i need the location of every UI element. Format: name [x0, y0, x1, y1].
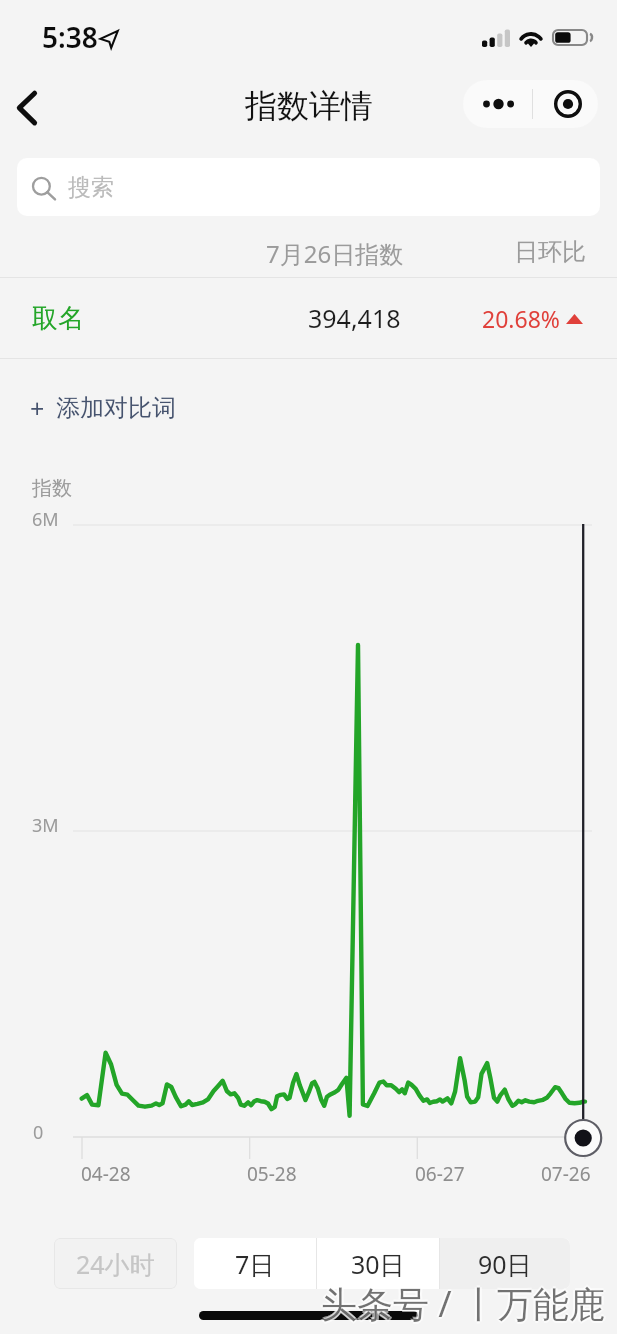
button[interactable]: 取名: [0, 278, 617, 358]
staticText: 90日: [478, 1247, 532, 1281]
staticText: +: [30, 391, 45, 425]
staticText: 头条号 / 丨万能鹿: [321, 1279, 606, 1328]
staticText: 取名: [32, 302, 84, 335]
staticText: 05-28: [247, 1161, 297, 1187]
staticText: 5:38: [42, 18, 98, 56]
button[interactable]: Close mini program: [533, 80, 598, 128]
staticText: 3M: [32, 813, 59, 838]
button[interactable]: 搜索: [17, 158, 600, 216]
staticText: 添加对比词: [56, 393, 176, 423]
staticText: 24小时: [76, 1247, 155, 1281]
staticText: 06-27: [415, 1161, 465, 1187]
staticText: 指数详情: [245, 86, 373, 126]
button[interactable]: 24小时: [54, 1238, 177, 1289]
staticText: 0: [33, 1120, 44, 1145]
staticText: 搜索: [68, 173, 114, 202]
staticText: 04-28: [81, 1161, 131, 1187]
button[interactable]: 90日: [440, 1238, 570, 1289]
button[interactable]: 7日: [194, 1238, 316, 1289]
staticText: 20.68%: [482, 303, 560, 334]
staticText: 7日: [235, 1247, 275, 1281]
staticText: 头条号 / 丨万能鹿: [323, 1279, 608, 1328]
staticText: 07-26: [541, 1161, 591, 1187]
staticText: 指数: [32, 476, 72, 501]
staticText: 30日: [351, 1247, 405, 1281]
staticText: 头条号 / 丨万能鹿: [321, 1281, 606, 1330]
staticText: 日环比: [514, 237, 586, 267]
button[interactable]: More options: [463, 80, 532, 128]
button[interactable]: Back: [0, 76, 58, 138]
button[interactable]: +: [30, 382, 176, 434]
staticText: 头条号 / 丨万能鹿: [321, 1277, 606, 1326]
staticText: 7月26日指数: [266, 237, 404, 270]
button[interactable]: 30日: [317, 1238, 439, 1289]
staticText: 头条号 / 丨万能鹿: [319, 1279, 604, 1328]
staticText: 6M: [32, 507, 59, 532]
staticText: 394,418: [308, 301, 401, 335]
